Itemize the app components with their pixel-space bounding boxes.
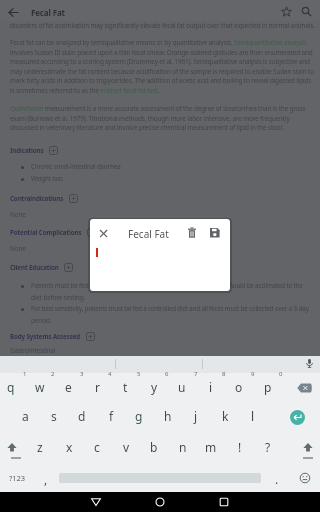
staticText: Gastrointestinal	[10, 346, 56, 355]
staticText: Patients must be fed a high-fat diet for…	[31, 281, 303, 289]
staticText: 4	[108, 370, 112, 378]
staticText: 7	[194, 370, 198, 378]
button[interactable]: n	[169, 432, 197, 462]
staticText: 8	[222, 370, 226, 378]
staticText: d	[78, 408, 86, 424]
staticText: ?	[265, 439, 271, 455]
button[interactable]	[153, 495, 167, 509]
button[interactable]: ?123	[1, 469, 33, 487]
staticText: For best sensitivity, patients must be f…	[31, 304, 309, 312]
button[interactable]: b	[140, 432, 168, 462]
button[interactable]	[6, 5, 21, 20]
button[interactable]: i	[197, 372, 225, 402]
staticText: h	[164, 408, 172, 424]
staticText: y	[151, 379, 158, 395]
staticText: Chronic small-intestinal diarrhea	[31, 162, 121, 170]
button[interactable]: j	[182, 401, 210, 431]
button[interactable]: .	[261, 470, 293, 488]
staticText: 5	[137, 370, 141, 378]
staticText: 1	[23, 370, 27, 378]
button[interactable]: Potential Complications	[10, 224, 96, 240]
staticText: 9	[251, 370, 255, 378]
button[interactable]	[217, 495, 231, 509]
staticText: discussed in veterinary literature and i…	[10, 123, 284, 132]
staticText: Quantitative measurement is a more accur…	[10, 104, 306, 113]
staticText: 0	[279, 370, 283, 378]
staticText: Contraindications	[10, 194, 64, 202]
staticText: i	[209, 379, 213, 395]
staticText: e	[65, 379, 72, 395]
button[interactable]: f	[97, 401, 125, 431]
button[interactable]: h	[154, 401, 182, 431]
staticText: measured according to a scoring system (…	[10, 57, 310, 66]
staticText: Weight loss	[31, 174, 63, 182]
button[interactable]: r	[83, 372, 111, 402]
button[interactable]: Body Systems Assessed	[10, 328, 95, 344]
button[interactable]: k	[211, 401, 239, 431]
button[interactable]: s	[40, 401, 68, 431]
button[interactable]	[209, 227, 221, 239]
staticText: None	[10, 210, 26, 219]
button[interactable]: v	[112, 432, 140, 462]
button[interactable]	[302, 442, 314, 454]
button[interactable]: Client Education	[10, 259, 73, 275]
button[interactable]: Contraindications	[10, 190, 78, 206]
button[interactable]: a	[11, 401, 39, 431]
button[interactable]: p	[254, 372, 282, 402]
button[interactable]: t	[111, 372, 139, 402]
staticText: o	[235, 379, 243, 395]
staticText: l	[251, 408, 255, 424]
button[interactable]	[292, 378, 316, 398]
button[interactable]: q	[0, 372, 25, 402]
button[interactable]	[299, 472, 311, 484]
button[interactable]: x	[55, 432, 83, 462]
staticText: v	[123, 439, 130, 455]
staticText: is sometimes referred to as the indirect…	[10, 86, 160, 95]
staticText: q	[7, 379, 15, 395]
staticText: j	[194, 408, 198, 424]
button[interactable]: y	[140, 372, 168, 402]
button[interactable]: d	[68, 401, 96, 431]
staticText: b	[150, 439, 158, 455]
button[interactable]: m	[197, 432, 225, 462]
staticText: k	[222, 408, 229, 424]
staticText: disorders of fat assimilation may signif…	[10, 21, 315, 30]
staticText: Potential Complications	[10, 228, 82, 236]
button[interactable]: o	[225, 372, 253, 402]
button[interactable]: e	[54, 372, 82, 402]
button[interactable]: Indications	[10, 142, 58, 158]
staticText: Client Education	[10, 263, 59, 271]
button[interactable]: z	[26, 432, 54, 462]
button[interactable]: ,	[30, 470, 62, 488]
staticText: r	[95, 379, 100, 395]
staticText: a	[22, 408, 29, 424]
button[interactable]: c	[83, 432, 111, 462]
button[interactable]: ?	[254, 432, 282, 462]
button[interactable]	[89, 495, 103, 509]
staticText: x	[66, 439, 73, 455]
staticText: Indications	[10, 146, 44, 154]
button[interactable]	[279, 4, 294, 19]
staticText: may underestimate the fat content becaus…	[10, 67, 314, 76]
staticText: n	[179, 439, 187, 455]
button[interactable]: w	[26, 372, 54, 402]
button[interactable]: u	[168, 372, 196, 402]
staticText: period.	[31, 316, 52, 325]
button[interactable]: g	[125, 401, 153, 431]
staticText: Body Systems Assessed	[10, 332, 81, 340]
button[interactable]	[97, 227, 110, 240]
button[interactable]	[186, 227, 198, 239]
button[interactable]	[304, 358, 315, 369]
button[interactable]	[6, 442, 18, 454]
staticText: Fecal Fat	[31, 7, 65, 18]
staticText: p	[264, 379, 272, 395]
button[interactable]: l	[239, 401, 267, 431]
staticText: None	[10, 244, 26, 253]
button[interactable]: !	[226, 432, 254, 462]
staticText: t	[123, 379, 128, 395]
button[interactable]	[290, 410, 305, 425]
staticText: s	[51, 408, 57, 424]
button[interactable]	[299, 4, 314, 19]
staticText: 2	[51, 370, 55, 378]
